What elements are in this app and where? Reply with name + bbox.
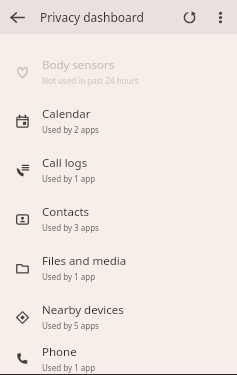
staticText: Call logs — [42, 155, 88, 171]
staticText: Used by 1 app — [42, 362, 96, 373]
staticText: Not used in past 24 hours — [42, 75, 139, 86]
staticText: Privacy dashboard — [40, 9, 144, 25]
staticText: Used by 5 apps — [42, 320, 99, 331]
button[interactable]: Body sensors — [0, 47, 237, 96]
staticText: Used by 2 apps — [42, 124, 99, 135]
staticText: Phone — [42, 344, 77, 360]
staticText: Used by 3 apps — [42, 222, 99, 233]
button[interactable]: Back — [0, 0, 34, 34]
button[interactable]: Calendar — [0, 96, 237, 145]
button[interactable]: Call logs — [0, 145, 237, 194]
staticText: Used by 1 app — [42, 173, 96, 184]
button[interactable]: Contacts — [0, 194, 237, 243]
staticText: Nearby devices — [42, 302, 124, 318]
button[interactable]: Phone — [0, 341, 237, 375]
staticText: Body sensors — [42, 57, 115, 73]
staticText: Calendar — [42, 106, 91, 122]
button[interactable]: Files and media — [0, 243, 237, 292]
staticText: Files and media — [42, 253, 127, 269]
button[interactable]: Refresh — [173, 1, 205, 33]
staticText: Contacts — [42, 204, 90, 220]
button[interactable]: More options — [205, 2, 235, 32]
button[interactable]: Nearby devices — [0, 292, 237, 341]
staticText: Used by 1 app — [42, 271, 96, 282]
